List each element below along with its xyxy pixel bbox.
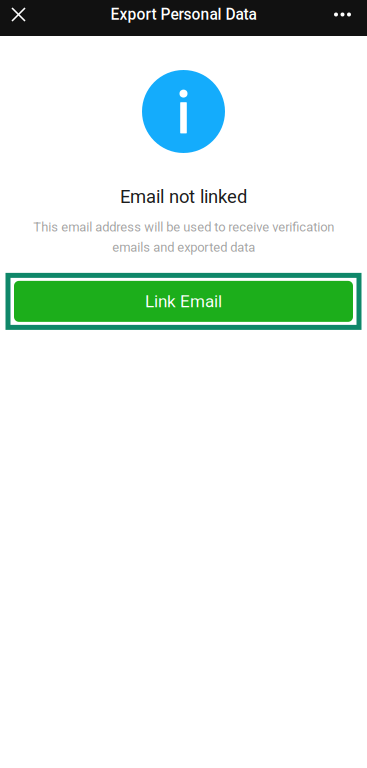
staticText: Email not linked bbox=[120, 186, 247, 208]
staticText: Link Email bbox=[145, 291, 222, 311]
button[interactable]: Link Email bbox=[5, 273, 361, 330]
button[interactable]: More options bbox=[318, 0, 367, 29]
staticText: This email address will be used to recei… bbox=[33, 220, 334, 255]
staticText: Export Personal Data bbox=[110, 5, 256, 24]
button[interactable]: Close bbox=[0, 0, 37, 29]
